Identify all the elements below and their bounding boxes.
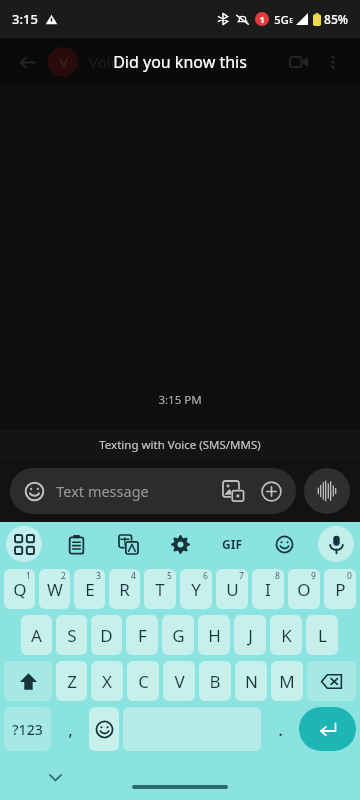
button[interactable]: Voice message <box>304 468 350 514</box>
button[interactable]: W <box>39 569 70 609</box>
button[interactable]: E <box>74 569 105 609</box>
staticText: 2 <box>61 570 66 582</box>
staticText: O <box>297 578 311 601</box>
staticText: Text message <box>56 481 149 501</box>
staticText: J <box>248 624 253 647</box>
button[interactable]: Attach media <box>220 478 246 504</box>
staticText: H <box>208 624 221 647</box>
staticText: D <box>100 624 113 647</box>
button[interactable]: Clipboard <box>58 526 94 562</box>
staticText: X <box>102 670 112 693</box>
staticText: P <box>335 578 346 601</box>
button[interactable]: A <box>21 615 52 655</box>
button[interactable]: U <box>216 569 248 609</box>
staticText: 3:15 PM <box>158 392 202 408</box>
staticText: R <box>119 578 130 601</box>
staticText: E <box>85 578 95 601</box>
button[interactable]: GIF <box>214 526 250 562</box>
button[interactable]: Back <box>10 45 44 79</box>
button[interactable]: M <box>271 661 303 701</box>
button[interactable]: , <box>55 707 85 751</box>
button[interactable]: Emoji <box>22 479 46 503</box>
button[interactable]: Apps <box>6 526 42 562</box>
button[interactable]: . <box>265 707 295 751</box>
button[interactable]: More options <box>316 45 350 79</box>
button[interactable]: K <box>270 615 302 655</box>
staticText: Q <box>13 578 27 601</box>
button[interactable]: G <box>162 615 194 655</box>
button[interactable]: R <box>109 569 140 609</box>
button[interactable]: Emoji <box>266 526 302 562</box>
button[interactable]: S <box>56 615 87 655</box>
button[interactable]: B <box>199 661 231 701</box>
staticText: W <box>47 578 63 601</box>
staticText: . <box>278 718 283 741</box>
button[interactable]: Enter <box>299 707 356 751</box>
staticText: 8 <box>275 570 280 582</box>
button[interactable]: V <box>163 661 195 701</box>
staticText: K <box>281 624 292 647</box>
button[interactable]: Voice input <box>318 526 354 562</box>
staticText: L <box>318 624 327 647</box>
staticText: U <box>226 578 239 601</box>
staticText: V <box>59 53 68 72</box>
staticText: A <box>31 624 42 647</box>
button[interactable]: Settings <box>162 526 198 562</box>
staticText: 9 <box>311 570 316 582</box>
staticText: 1 <box>259 13 265 25</box>
staticText: ?123 <box>12 720 43 739</box>
staticText: F <box>138 624 147 647</box>
staticText: , <box>68 718 73 741</box>
button[interactable]: Shift <box>4 661 52 701</box>
button[interactable]: J <box>234 615 266 655</box>
button[interactable]: X <box>91 661 123 701</box>
button[interactable]: Y <box>180 569 212 609</box>
staticText: C <box>138 670 149 693</box>
button[interactable]: Emoji <box>10 468 296 514</box>
button[interactable]: D <box>91 615 122 655</box>
staticText: Z <box>67 670 77 693</box>
staticText: 3:15 <box>12 10 38 28</box>
button[interactable]: Q <box>4 569 35 609</box>
staticText: I <box>265 578 271 601</box>
button[interactable]: I <box>252 569 284 609</box>
button[interactable]: C <box>127 661 159 701</box>
button[interactable]: L <box>306 615 338 655</box>
button[interactable]: N <box>235 661 267 701</box>
button[interactable]: F <box>126 615 158 655</box>
button[interactable]: Emoji <box>89 707 119 751</box>
staticText: 7 <box>239 570 244 582</box>
staticText: Y <box>191 578 201 601</box>
button[interactable]: ?123 <box>4 707 51 751</box>
staticText: 4 <box>131 570 136 582</box>
button[interactable]: T <box>144 569 176 609</box>
staticText: S <box>67 624 77 647</box>
staticText: 6 <box>203 570 208 582</box>
button[interactable]: Translate <box>110 526 146 562</box>
staticText: M <box>279 670 295 693</box>
staticText: Did you know this <box>113 51 247 73</box>
button[interactable]: Video call <box>282 45 316 79</box>
button[interactable]: Backspace <box>307 661 356 701</box>
staticText: 3 <box>96 570 101 582</box>
staticText: GIF <box>222 536 242 552</box>
staticText: G <box>172 624 185 647</box>
button[interactable]: O <box>288 569 320 609</box>
button[interactable]: Hide keyboard <box>40 762 70 792</box>
staticText: T <box>155 578 165 601</box>
staticText: 5 <box>167 570 172 582</box>
button[interactable]: More attachments <box>258 478 284 504</box>
staticText: 85% <box>324 11 348 27</box>
staticText: Voicemail <box>88 52 158 72</box>
staticText: 1 <box>26 570 31 582</box>
button[interactable]: Z <box>56 661 87 701</box>
staticText: ᴇ <box>289 14 293 25</box>
button[interactable]: P <box>324 569 356 609</box>
staticText: Texting with Voice (SMS/MMS) <box>99 437 261 453</box>
staticText: N <box>245 670 258 693</box>
staticText: V <box>174 670 185 693</box>
staticText: B <box>209 670 221 693</box>
button[interactable]: H <box>198 615 230 655</box>
staticText: 0 <box>347 570 352 582</box>
